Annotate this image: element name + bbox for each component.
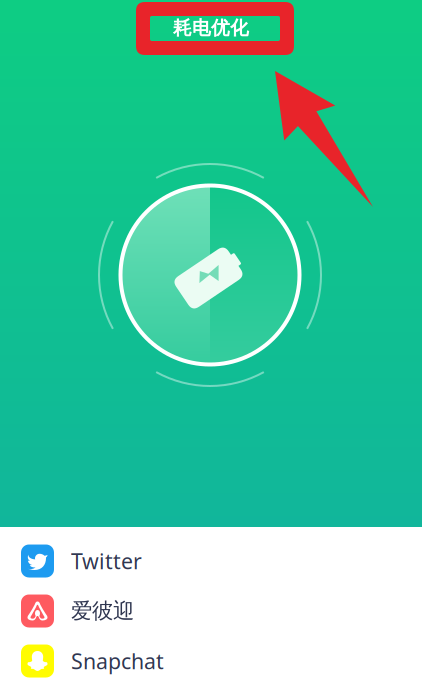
staticText: Twitter xyxy=(71,547,142,575)
button[interactable]: Snapchat xyxy=(0,636,422,685)
button[interactable]: 耗电优化 xyxy=(151,13,271,43)
staticText: 耗电优化 xyxy=(173,16,249,39)
staticText: Snapchat xyxy=(71,647,164,675)
button[interactable]: Twitter xyxy=(0,536,422,586)
button[interactable]: 爱彼迎 xyxy=(0,586,422,636)
staticText: 爱彼迎 xyxy=(71,598,134,624)
